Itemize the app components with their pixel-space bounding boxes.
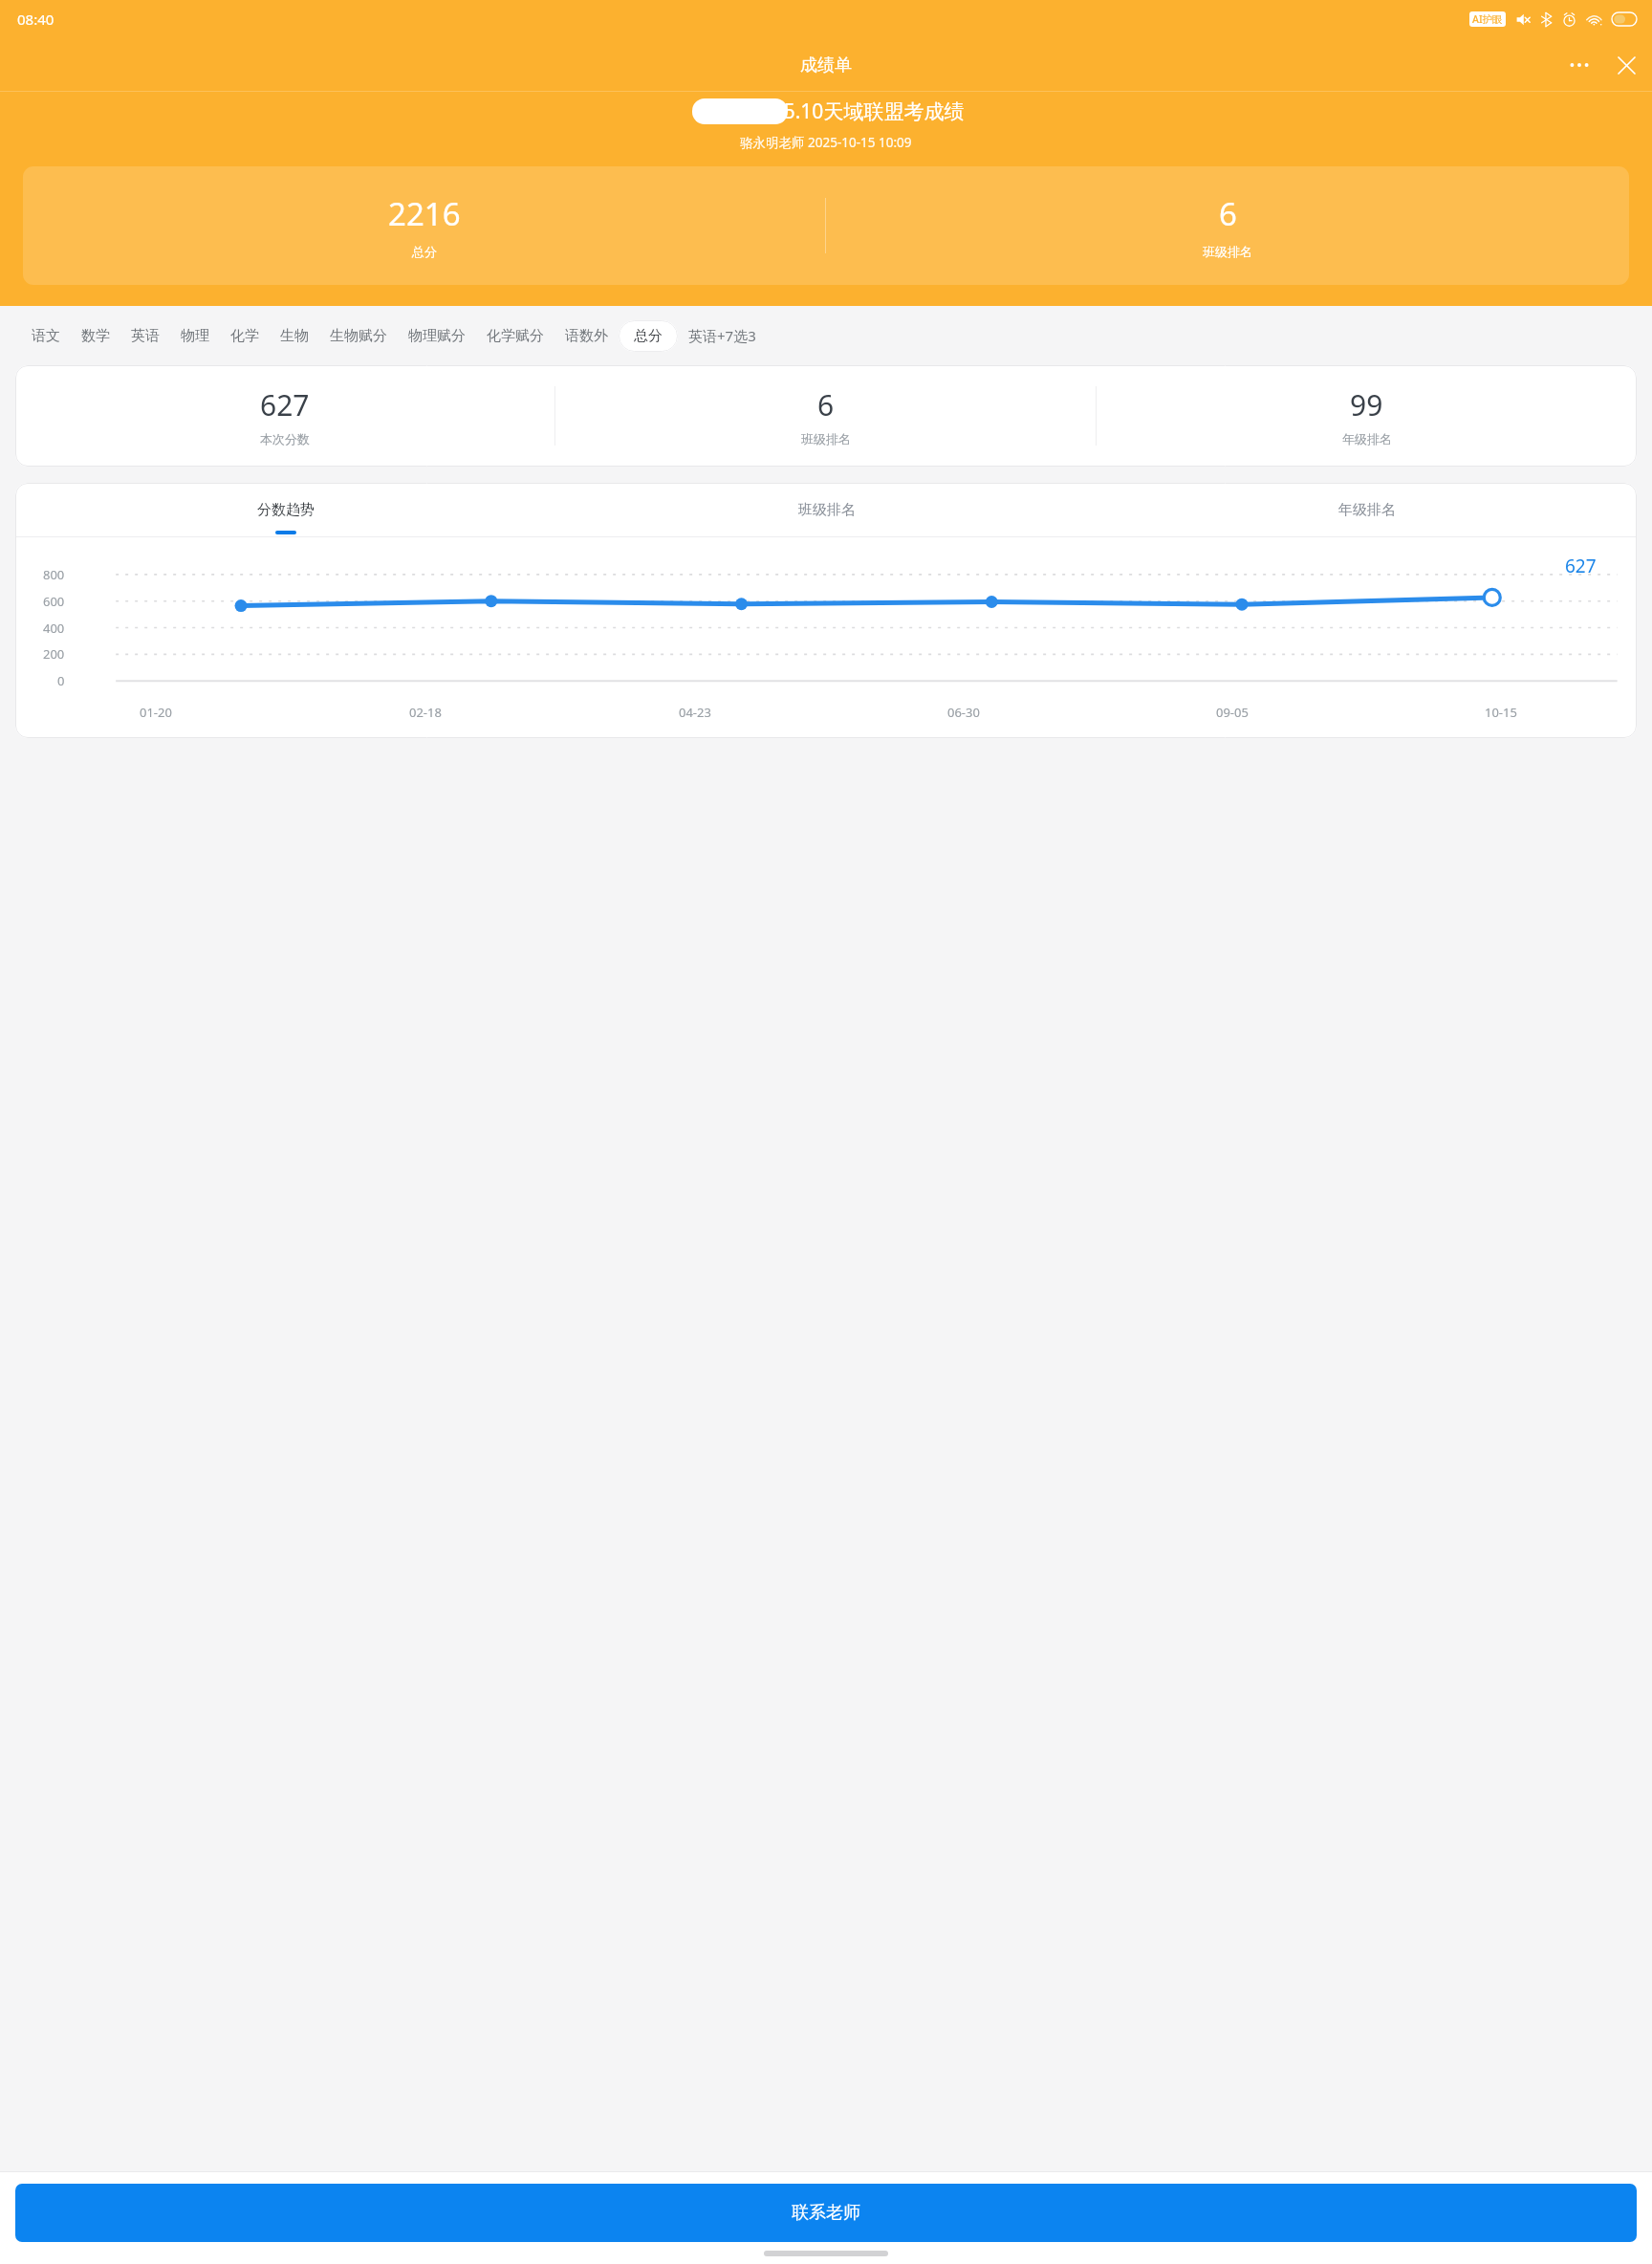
button[interactable]: 语数外 [554,319,619,353]
staticText: 600 [43,593,65,610]
staticText: 0 [57,672,65,689]
staticText: 年级排名 [1338,501,1396,519]
staticText: 分数趋势 [257,501,315,519]
staticText: 物理 [181,327,209,345]
button[interactable]: 联系老师 [15,2184,1637,2242]
staticText: 英语+7选3 [688,326,756,345]
staticText: 班级排名 [798,501,856,519]
button[interactable]: 物理 [170,319,220,353]
staticText: 02-18 [409,704,442,721]
button[interactable]: 化学 [220,319,270,353]
staticText: 化学 [230,327,259,345]
staticText: 语文 [32,327,60,345]
staticText: 04-23 [679,704,711,721]
staticText: 数学 [81,327,110,345]
button[interactable]: 化学赋分 [476,319,554,353]
staticText: 800 [43,566,65,583]
button[interactable]: 英语 [120,319,170,353]
staticText: 成绩单 [800,54,852,76]
staticText: 英语 [131,327,160,345]
staticText: 6 [1219,192,1237,235]
button[interactable]: 年级排名 [1097,483,1637,537]
button[interactable]: 关闭 [1600,40,1652,90]
staticText: 400 [43,620,65,637]
staticText: 08:40 [17,10,54,29]
button[interactable]: 班级排名 [556,483,1097,537]
staticText: AI护眼 [1472,12,1503,26]
staticText: 骆永明老师 2025-10-15 10:09 [740,134,912,151]
staticText: 总分 [412,244,437,259]
staticText: 语数外 [565,327,608,345]
staticText: 09-05 [1216,704,1249,721]
staticText: 化学赋分 [487,327,544,345]
button[interactable]: 总分 [619,320,678,352]
button[interactable]: 生物 [270,319,319,353]
staticText: 总分 [634,327,663,345]
staticText: 627 [1565,554,1597,578]
staticText: 物理赋分 [408,327,466,345]
staticText: 的2025.10天域联盟考成绩 [687,98,965,125]
staticText: 班级排名 [801,431,851,446]
staticText: 2216 [388,192,461,235]
staticText: 06-30 [947,704,980,721]
staticText: 本次分数 [260,431,310,446]
staticText: 生物赋分 [330,327,387,345]
button[interactable]: 英语+7选3 [678,318,767,353]
staticText: 10-15 [1485,704,1517,721]
button[interactable]: 数学 [71,319,120,353]
staticText: 627 [260,385,310,424]
button[interactable]: 语文 [21,319,71,353]
staticText: 99 [1350,385,1383,424]
button[interactable]: 生物赋分 [319,319,398,353]
staticText: 年级排名 [1342,431,1392,446]
staticText: 01-20 [140,704,172,721]
staticText: 班级排名 [1203,244,1252,259]
staticText: 6 [817,385,835,424]
staticText: 生物 [280,327,309,345]
button[interactable]: 更多 [1558,40,1600,90]
staticText: 200 [43,645,65,663]
staticText: 联系老师 [792,2202,860,2224]
button[interactable]: 物理赋分 [398,319,476,353]
button[interactable]: 分数趋势 [15,483,556,537]
